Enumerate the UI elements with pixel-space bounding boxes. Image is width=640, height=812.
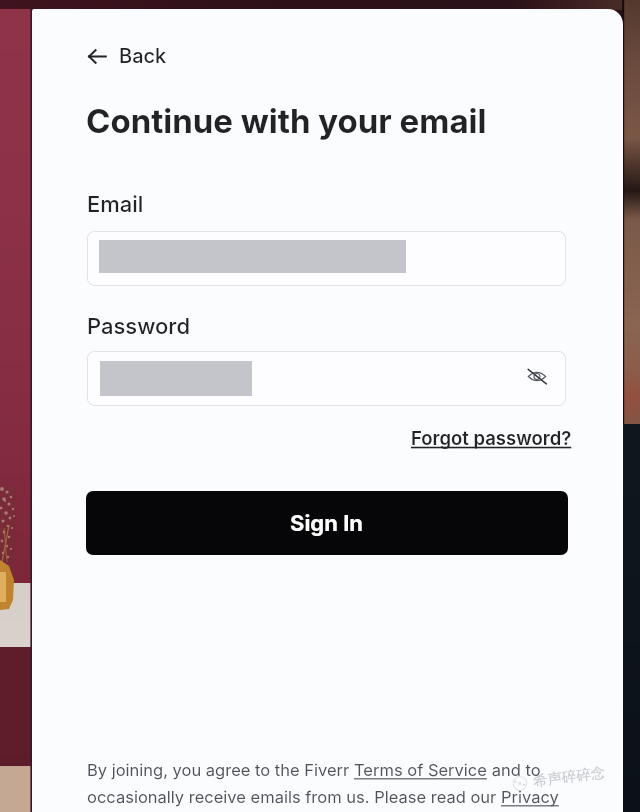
staticText: Password [87,313,191,340]
staticText: 希声碎碎念 [532,763,607,790]
button[interactable] [87,231,566,286]
staticText: Privacy [501,787,559,807]
staticText: occasionally receive emails from us. Ple… [87,787,501,807]
staticText: and to [487,760,541,780]
staticText: Back [119,44,167,68]
staticText: Continue with your email [86,101,487,141]
staticText: Sign In [290,510,364,537]
staticText: Terms of Service [354,760,487,780]
staticText: Forgot password? [411,427,572,449]
staticText: By joining, you agree to the Fiverr [87,760,354,780]
button[interactable]: Show password [87,351,566,406]
button[interactable]: Sign In [86,491,568,555]
button[interactable]: Privacy [501,787,559,807]
button[interactable]: Show password [522,361,552,391]
button[interactable]: Back [80,39,175,73]
button[interactable]: Terms of Service [354,760,487,780]
button[interactable]: Forgot password? [407,423,576,453]
staticText: Email [87,191,144,218]
